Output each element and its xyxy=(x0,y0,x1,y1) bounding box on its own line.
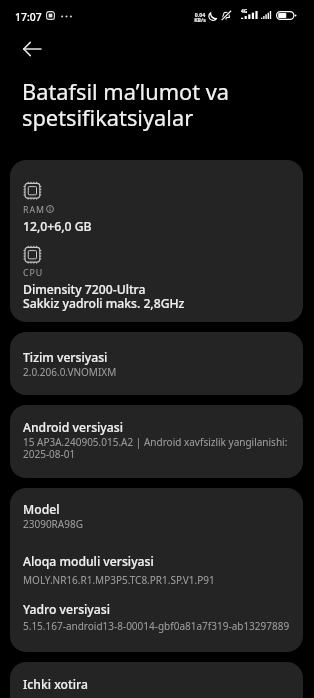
staticText: 23090RA98G xyxy=(23,517,83,531)
staticText: MOLY.NR16.R1.MP3P5.TC8.PR1.SP.V1.P91 xyxy=(23,573,215,587)
staticText: Yadro versiyasi xyxy=(23,601,110,618)
staticText: 0.04 KB/s xyxy=(194,11,206,23)
staticText: 4G xyxy=(241,8,248,15)
staticText: CPU xyxy=(23,267,44,279)
staticText: 15 AP3A.240905.015.A2 | Android xavfsizl… xyxy=(23,435,288,461)
button[interactable]: Ichki xotira xyxy=(10,662,303,698)
button[interactable]: Model xyxy=(10,488,303,652)
staticText: 5.15.167-android13-8-00014-gbf0a81a7f319… xyxy=(23,619,290,633)
button[interactable]: Back xyxy=(12,29,52,69)
staticText: Aloqa moduli versiyasi xyxy=(23,553,154,570)
staticText: 17:07 xyxy=(15,10,42,24)
staticText: Model xyxy=(23,501,60,518)
staticText: 2.0.206.0.VNOMIXM xyxy=(23,365,117,379)
staticText: 12,0+6,0 GB xyxy=(23,218,92,235)
button[interactable]: Android versiyasi xyxy=(10,405,303,478)
button[interactable]: RAM xyxy=(10,160,303,322)
staticText: Ichki xotira xyxy=(23,676,88,693)
staticText: Android versiyasi xyxy=(23,419,123,436)
button[interactable]: Tizim versiyasi xyxy=(10,332,303,395)
staticText: Batafsil ma’lumot va xyxy=(22,77,230,107)
staticText: RAM xyxy=(23,204,45,216)
staticText: Tizim versiyasi xyxy=(23,349,108,366)
staticText: spetsifikatsiyalar xyxy=(22,103,194,133)
staticText: Dimensity 7200-Ultra Sakkiz yadroli maks… xyxy=(23,281,185,312)
